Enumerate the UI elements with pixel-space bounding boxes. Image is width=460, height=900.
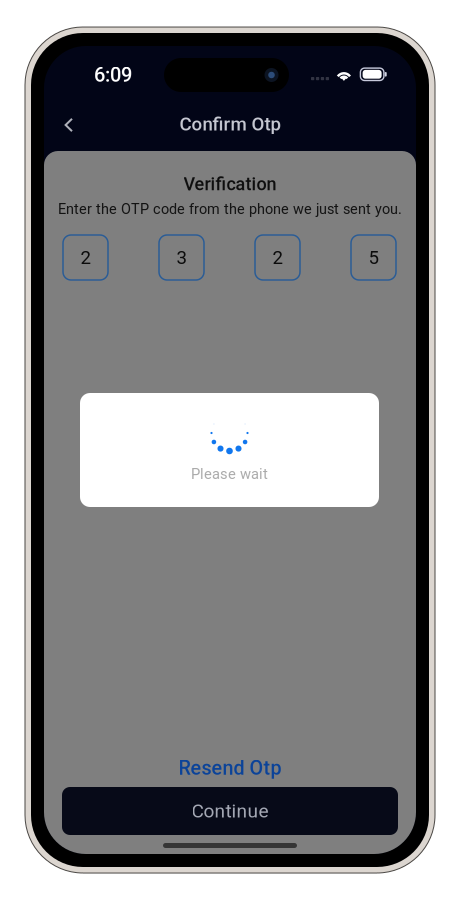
staticText: Resend Otp [178,756,281,779]
staticText: Confirm Otp [179,113,280,135]
button[interactable]: 5 [351,235,396,280]
staticText: 6:09 [94,63,132,87]
staticText: 2 [80,247,90,268]
staticText: Verification [183,173,276,195]
button[interactable]: Back [47,103,91,147]
button[interactable]: Continue [62,787,398,835]
staticText: 3 [176,247,186,268]
staticText: Please wait [191,465,268,483]
staticText: Enter the OTP code from the phone we jus… [58,201,402,217]
button[interactable]: 2 [63,235,108,280]
button[interactable]: 2 [255,235,300,280]
staticText: Continue [191,800,268,822]
staticText: 5 [368,247,378,268]
button[interactable]: Resend Otp [130,754,330,782]
staticText: 2 [272,247,282,268]
button[interactable]: 3 [159,235,204,280]
